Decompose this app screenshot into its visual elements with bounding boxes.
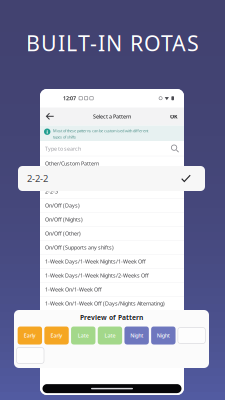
staticText: types of shifts bbox=[53, 134, 76, 139]
staticText: 12:07 bbox=[63, 95, 76, 102]
button[interactable]: 1-Week Days/1-Week Nights/2-Weeks Off bbox=[40, 268, 184, 282]
staticText: Late bbox=[104, 332, 115, 339]
staticText: 2-2-2 bbox=[27, 172, 48, 185]
staticText: 1-Week Days/1-Week Nights/1-Week Off bbox=[45, 258, 146, 265]
staticText: 2-2-2 bbox=[45, 174, 58, 181]
button[interactable]: On/Off (Days) bbox=[40, 198, 184, 212]
staticText: 2-2-3 bbox=[45, 188, 58, 195]
staticText: 1-Week On/1-Week Off (Days/Nights Altern… bbox=[45, 300, 165, 307]
button[interactable]: Type to search bbox=[40, 141, 184, 156]
button[interactable]: Back bbox=[40, 108, 60, 124]
button[interactable]: 1-Week Days/1-Week Nights/1-Week Off bbox=[40, 254, 184, 268]
staticText: OK bbox=[170, 113, 178, 120]
button[interactable]: On/Off (Supports any shifts) bbox=[40, 240, 184, 254]
staticText: Night bbox=[157, 332, 170, 339]
staticText: 1-Week Days/1-Week Nights/2-Weeks Off bbox=[45, 272, 149, 279]
staticText: Preview of Pattern bbox=[80, 313, 143, 322]
button[interactable]: 2-2-2 bbox=[18, 166, 205, 191]
button[interactable]: 1-Week On/1-Week Off (Days/Nights Altern… bbox=[40, 296, 184, 310]
staticText: On/Off (Other) bbox=[45, 230, 81, 237]
staticText: On/Off (Nights) bbox=[45, 216, 83, 223]
staticText: Other/Custom Pattern bbox=[45, 160, 99, 167]
staticText: Type to search bbox=[45, 145, 81, 152]
staticText: BUILT-IN ROTAS bbox=[26, 29, 199, 57]
staticText: 2-Weeks On/2-Weeks Off bbox=[45, 314, 108, 321]
staticText: 5-On/2-Off bbox=[45, 342, 72, 349]
button[interactable]: On/Off (Nights) bbox=[40, 212, 184, 226]
button[interactable]: On/Off (Other) bbox=[40, 226, 184, 240]
staticText: Early bbox=[50, 332, 62, 339]
button[interactable]: Other/Custom Pattern bbox=[40, 156, 184, 170]
button[interactable]: 1-Week On/1-Week Off bbox=[40, 282, 184, 296]
button[interactable]: 2-2-3 bbox=[40, 184, 184, 198]
button[interactable]: 4-On/4-Off bbox=[40, 324, 184, 338]
staticText: Most of these patterns can be customised… bbox=[53, 128, 148, 133]
button[interactable]: 5-On/2-Off bbox=[40, 338, 184, 352]
staticText: Night bbox=[130, 332, 143, 339]
staticText: Select a Pattern bbox=[93, 113, 131, 120]
button[interactable]: OK bbox=[164, 108, 184, 124]
staticText: 4-On/4-Off bbox=[45, 328, 72, 335]
staticText: 1-Week On/1-Week Off bbox=[45, 286, 102, 293]
staticText: On/Off (Supports any shifts) bbox=[45, 244, 114, 251]
button[interactable]: 2-Weeks On/2-Weeks Off bbox=[40, 310, 184, 324]
staticText: Early bbox=[24, 332, 36, 339]
staticText: On/Off (Days) bbox=[45, 202, 80, 209]
staticText: Late bbox=[78, 332, 89, 339]
button[interactable]: 2-2-2 bbox=[40, 170, 184, 184]
